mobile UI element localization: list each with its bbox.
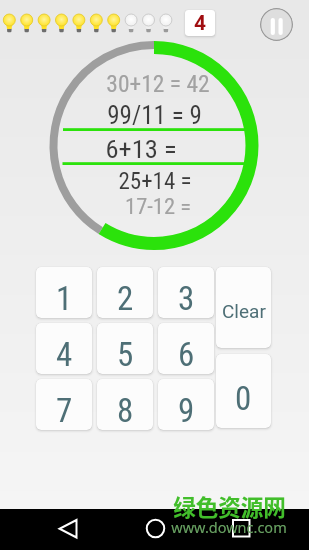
button[interactable] xyxy=(210,510,270,550)
staticText: 9 xyxy=(178,391,195,430)
staticText: 6 xyxy=(178,335,195,374)
staticText: 4 xyxy=(56,335,73,374)
button[interactable]: 3 xyxy=(158,267,214,318)
staticText: 7 xyxy=(56,391,73,430)
button[interactable] xyxy=(40,510,100,550)
button[interactable]: 1 xyxy=(36,267,92,318)
staticText: www.downc.com xyxy=(171,517,287,537)
staticText: Clear xyxy=(222,300,266,322)
button[interactable]: 9 xyxy=(158,379,214,430)
button[interactable]: 2 xyxy=(97,267,153,318)
staticText: 6+13 = xyxy=(105,133,177,164)
button[interactable]: 8 xyxy=(97,379,153,430)
staticText: 17-12 = xyxy=(125,193,191,219)
button[interactable]: Clear xyxy=(216,267,271,348)
button[interactable]: 4 xyxy=(36,323,92,374)
button[interactable] xyxy=(260,8,293,41)
staticText: 8 xyxy=(117,391,134,430)
staticText: 99/11 = 9 xyxy=(107,101,202,130)
button[interactable]: 7 xyxy=(36,379,92,430)
staticText: 4 xyxy=(194,11,207,36)
staticText: 绿色资源网 xyxy=(173,490,286,523)
staticText: 0 xyxy=(235,379,252,418)
button[interactable]: 0 xyxy=(216,354,271,428)
staticText: 1 xyxy=(56,279,73,318)
staticText: 25+14 = xyxy=(118,168,192,195)
staticText: 3 xyxy=(178,279,195,318)
button[interactable]: 5 xyxy=(97,323,153,374)
staticText: 5 xyxy=(117,335,134,374)
staticText: 30+12 = 42 xyxy=(106,70,210,98)
button[interactable] xyxy=(125,510,185,550)
button[interactable]: 6 xyxy=(158,323,214,374)
staticText: 2 xyxy=(117,279,134,318)
